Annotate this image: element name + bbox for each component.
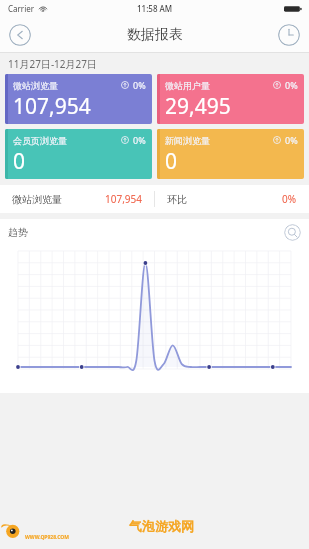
button[interactable]: 环比	[155, 192, 309, 206]
staticText: 107,954	[13, 92, 91, 121]
button[interactable]: 会员页浏览量	[5, 129, 152, 179]
staticText: 0%	[282, 192, 297, 206]
button[interactable]: History	[278, 24, 300, 46]
button[interactable]: 微站用户量	[157, 74, 304, 124]
button[interactable]: Back	[9, 24, 31, 46]
staticText: 微站浏览量	[12, 193, 62, 206]
staticText: 0%	[285, 79, 298, 91]
staticText: WWW.QP928.COM	[25, 534, 297, 541]
staticText: 环比	[167, 193, 187, 206]
staticText: 0%	[133, 134, 146, 146]
staticText: 新闻浏览量	[165, 135, 210, 146]
staticText: 微站用户量	[165, 80, 210, 91]
button[interactable]: 微站浏览量	[5, 74, 152, 124]
button[interactable]: 新闻浏览量	[157, 129, 304, 179]
staticText: 气泡游戏网	[129, 518, 194, 534]
staticText: 11月27日-12月27日	[8, 57, 97, 71]
staticText: 0	[165, 147, 178, 176]
button[interactable]: 微站浏览量	[0, 192, 154, 206]
button[interactable]: Zoom chart	[284, 224, 301, 241]
staticText: 29,495	[165, 92, 231, 121]
staticText: 0	[13, 147, 26, 176]
staticText: 趋势	[8, 226, 28, 239]
staticText: 数据报表	[127, 26, 183, 44]
staticText: 0%	[133, 79, 146, 91]
staticText: 107,954	[105, 192, 142, 206]
staticText: 会员页浏览量	[13, 135, 67, 146]
staticText: 微站浏览量	[13, 80, 58, 91]
staticText: 11:58 AM	[137, 3, 173, 14]
staticText: 0%	[285, 134, 298, 146]
staticText: Carrier	[8, 3, 35, 14]
